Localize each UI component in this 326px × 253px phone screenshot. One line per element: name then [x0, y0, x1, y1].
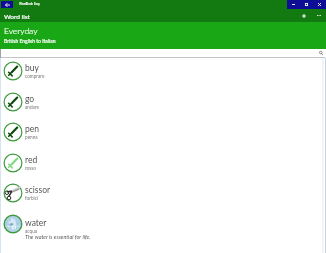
staticText: British English to Italian — [4, 38, 56, 44]
staticText: water — [25, 218, 47, 228]
button[interactable]: Search — [1, 49, 325, 58]
staticText: scissor — [25, 185, 51, 195]
staticText: andare — [25, 104, 39, 110]
button[interactable]: buy — [0, 58, 326, 89]
staticText: Everyday — [4, 26, 38, 36]
button[interactable]: go — [0, 89, 326, 120]
button[interactable]: Add word — [296, 9, 311, 22]
staticText: buy — [25, 63, 39, 73]
button[interactable]: Maximize — [300, 0, 313, 9]
staticText: forbici — [25, 195, 39, 201]
button[interactable]: Back — [1, 1, 13, 8]
staticText: The water is essential for life. — [25, 234, 91, 241]
button[interactable]: scissor — [0, 180, 326, 211]
button[interactable]: water — [0, 211, 326, 242]
staticText: go — [25, 94, 35, 104]
button[interactable]: Close — [313, 0, 326, 9]
staticText: WordBank Easy — [19, 2, 40, 6]
staticText: pen — [25, 124, 39, 134]
button[interactable]: red — [0, 150, 326, 181]
staticText: penna — [25, 134, 38, 140]
button[interactable]: Minimize — [287, 0, 300, 9]
staticText: acqua — [25, 228, 38, 234]
staticText: rosso — [25, 165, 36, 171]
button[interactable]: pen — [0, 119, 326, 150]
staticText: comprare — [25, 73, 45, 79]
staticText: Word list — [4, 13, 30, 21]
staticText: red — [25, 155, 38, 165]
button[interactable]: More options — [312, 9, 326, 22]
